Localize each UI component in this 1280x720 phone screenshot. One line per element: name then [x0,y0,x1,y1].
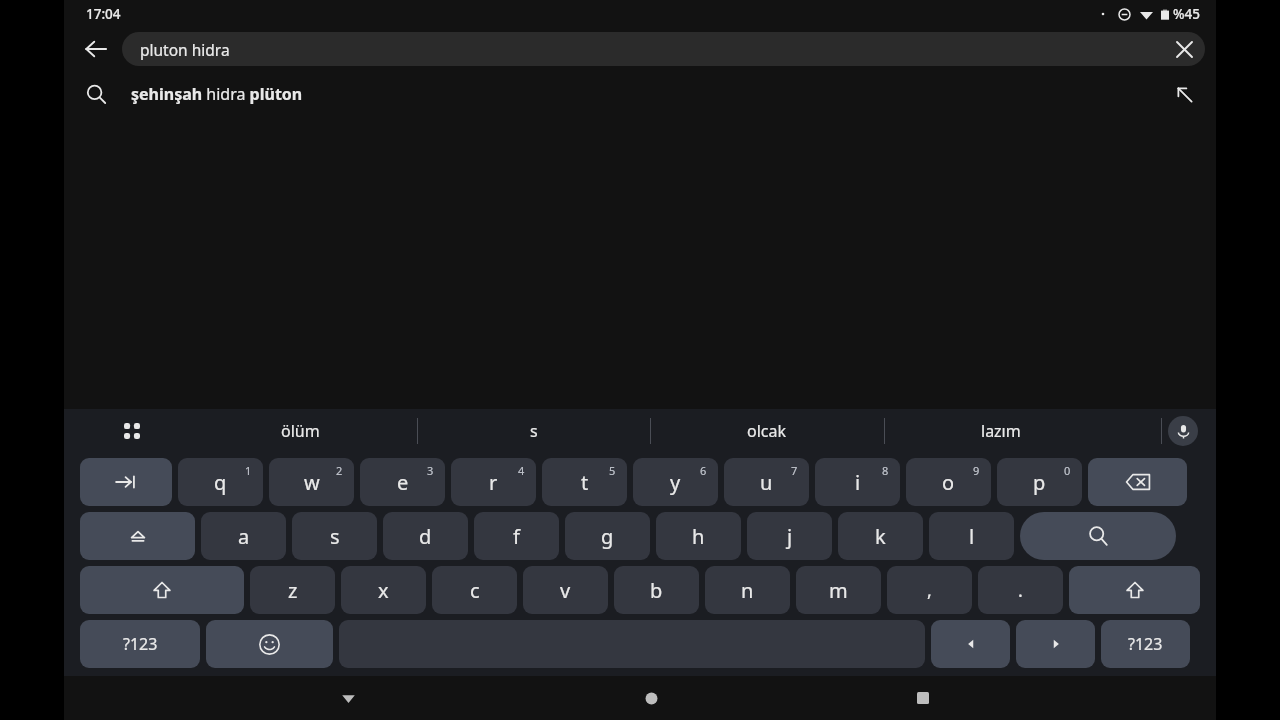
button[interactable]: Voice input [1168,416,1198,446]
staticText: r [489,469,498,496]
staticText: 9 [973,463,980,478]
button[interactable]: , [887,566,972,614]
staticText: ?123 [1128,633,1163,655]
button[interactable]: lazım [884,409,1118,453]
button[interactable]: Emoji [206,620,333,668]
button[interactable]: d [383,512,468,560]
button[interactable]: c [432,566,517,614]
staticText: 1 [245,463,252,478]
button[interactable]: y [633,458,718,506]
button[interactable]: ?123 [1101,620,1190,668]
button[interactable]: o [906,458,991,506]
button[interactable]: Recent apps [903,678,943,718]
button[interactable]: Clipboard [110,409,154,453]
staticText: w [304,469,320,496]
staticText: 4 [518,463,525,478]
button[interactable]: Hide keyboard [328,678,368,718]
button[interactable]: pluton hidra [122,32,1205,66]
staticText: olcak [747,420,787,442]
staticText: o [942,469,955,496]
staticText: 3 [427,463,434,478]
button[interactable]: Clear query [1169,34,1199,64]
button[interactable]: e [360,458,445,506]
button[interactable]: g [565,512,650,560]
staticText: ?123 [123,633,158,655]
button[interactable]: x [341,566,426,614]
button[interactable]: t [542,458,627,506]
button[interactable]: q [178,458,263,506]
staticText: d [419,523,432,550]
staticText: k [875,523,886,550]
button[interactable]: s [292,512,377,560]
staticText: 8 [882,463,889,478]
button[interactable]: a [201,512,286,560]
button[interactable]: l [929,512,1014,560]
button[interactable]: Caps lock [80,512,195,560]
staticText: g [601,523,614,550]
button[interactable]: Backspace [1088,458,1187,506]
staticText: h [692,523,705,550]
button[interactable]: Back [72,28,120,70]
staticText: z [288,577,298,604]
staticText: y [670,469,681,496]
staticText: p [1033,469,1046,496]
staticText: 6 [700,463,707,478]
staticText: %45 [1173,5,1200,23]
button[interactable]: Shift [1069,566,1200,614]
staticText: i [855,469,861,496]
button[interactable]: s [417,409,650,453]
button[interactable]: Home [631,678,671,718]
button[interactable]: n [705,566,790,614]
button[interactable]: Insert suggestion [1162,72,1206,116]
button[interactable]: r [451,458,536,506]
staticText: v [560,577,571,604]
staticText: f [513,523,520,550]
button[interactable]: olcak [650,409,884,453]
staticText: 7 [791,463,798,478]
staticText: 5 [609,463,616,478]
button[interactable]: w [269,458,354,506]
button[interactable]: i [815,458,900,506]
staticText: s [330,523,340,550]
button[interactable]: f [474,512,559,560]
button[interactable]: ölüm [184,409,417,453]
button[interactable]: k [838,512,923,560]
button[interactable]: Cursor right [1016,620,1095,668]
staticText: x [378,577,389,604]
staticText: b [650,577,663,604]
staticText: . [1018,578,1023,603]
staticText: ölüm [281,420,320,442]
staticText: s [530,420,538,442]
button[interactable]: şehinşah hidra plüton [64,70,1216,117]
staticText: c [470,577,480,604]
staticText: şehinşah hidra plüton [131,83,303,105]
staticText: n [741,577,754,604]
button[interactable]: p [997,458,1082,506]
button[interactable]: Cursor left [931,620,1010,668]
button[interactable]: m [796,566,881,614]
button[interactable]: Search [1020,512,1176,560]
button[interactable]: Tab [80,458,172,506]
staticText: 0 [1064,463,1071,478]
button[interactable]: j [747,512,832,560]
button[interactable]: v [523,566,608,614]
button[interactable]: b [614,566,699,614]
button[interactable]: Shift [80,566,244,614]
staticText: lazım [981,420,1021,442]
button[interactable]: u [724,458,809,506]
staticText: a [238,523,250,550]
staticText: e [397,469,409,496]
staticText: q [214,469,227,496]
staticText: l [969,523,975,550]
staticText: , [927,578,932,603]
staticText: m [829,577,848,604]
staticText: t [581,469,589,496]
button[interactable]: ?123 [80,620,200,668]
staticText: u [760,469,773,496]
button[interactable]: . [978,566,1063,614]
staticText: 17:04 [86,5,121,23]
button[interactable]: z [250,566,335,614]
button[interactable]: h [656,512,741,560]
staticText: j [787,523,793,550]
